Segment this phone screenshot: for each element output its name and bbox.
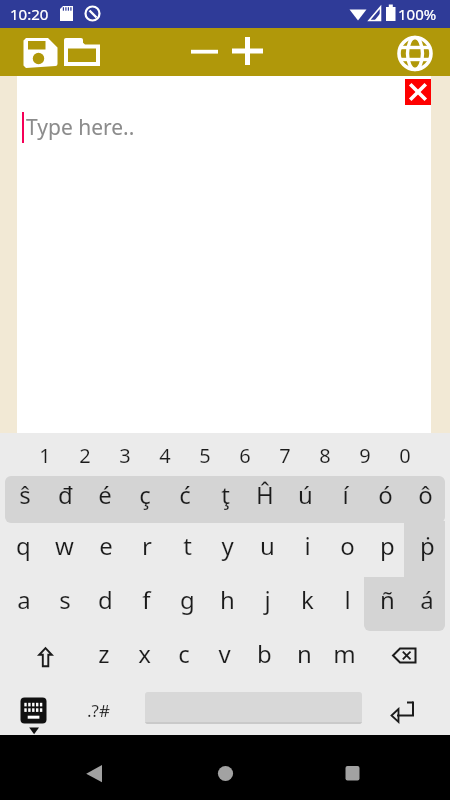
button[interactable]: .?# (78, 685, 118, 735)
button[interactable]: đ (45, 476, 85, 523)
button[interactable]: 7 (265, 433, 305, 473)
staticText: 10:20 (10, 4, 49, 24)
button[interactable]: é (85, 476, 125, 523)
button[interactable]: k (287, 577, 327, 631)
button[interactable]: c (164, 631, 204, 685)
button[interactable] (18, 33, 62, 73)
staticText: 6 (239, 442, 251, 469)
button[interactable]: ô (405, 476, 445, 523)
button[interactable]: 6 (225, 433, 265, 473)
staticText: ô (418, 478, 433, 511)
button[interactable]: ć (165, 476, 205, 523)
button[interactable] (384, 631, 428, 685)
staticText: ţ (221, 478, 230, 511)
button[interactable] (382, 685, 426, 735)
button[interactable]: d (85, 577, 126, 631)
staticText: b (257, 637, 272, 670)
button[interactable]: 1 (25, 433, 65, 473)
button[interactable]: z (84, 631, 124, 685)
staticText: 1 (39, 442, 51, 469)
staticText: l (344, 583, 351, 616)
staticText: 7 (279, 442, 291, 469)
button[interactable] (73, 751, 117, 795)
button[interactable] (393, 30, 437, 74)
button[interactable] (330, 751, 374, 795)
staticText: p (380, 529, 395, 562)
button[interactable]: v (204, 631, 244, 685)
button[interactable]: q (3, 523, 44, 577)
button[interactable]: p (367, 523, 407, 577)
staticText: g (180, 583, 195, 616)
staticText: o (340, 529, 355, 562)
button[interactable]: 2 (65, 433, 105, 473)
button[interactable]: 9 (345, 433, 385, 473)
button[interactable] (14, 685, 58, 735)
button[interactable] (145, 692, 362, 724)
button[interactable] (405, 79, 431, 105)
button[interactable]: j (247, 577, 287, 631)
button[interactable]: í (325, 476, 365, 523)
button[interactable]: e (85, 523, 126, 577)
button[interactable]: 0 (385, 433, 425, 473)
staticText: q (16, 529, 31, 562)
button[interactable]: ú (285, 476, 325, 523)
button[interactable]: r (126, 523, 167, 577)
staticText: ú (298, 478, 313, 511)
button[interactable]: m (324, 631, 364, 685)
staticText: ñ (380, 583, 395, 616)
staticText: 9 (359, 442, 371, 469)
button[interactable]: o (327, 523, 367, 577)
button[interactable]: 5 (185, 433, 225, 473)
staticText: d (98, 583, 113, 616)
staticText: y (221, 529, 234, 562)
button[interactable]: ŝ (5, 476, 45, 523)
button[interactable]: g (167, 577, 207, 631)
button[interactable] (60, 33, 104, 73)
staticText: z (98, 637, 110, 670)
button[interactable]: Ĥ (245, 476, 285, 523)
button[interactable]: ó (365, 476, 405, 523)
staticText: u (260, 529, 275, 562)
staticText: 0 (399, 442, 411, 469)
button[interactable]: 4 (145, 433, 185, 473)
button[interactable]: ç (125, 476, 165, 523)
staticText: ć (179, 478, 191, 511)
staticText: ç (139, 478, 151, 511)
button[interactable]: y (207, 523, 247, 577)
staticText: x (138, 637, 151, 670)
staticText: ṗ (420, 529, 435, 562)
button[interactable]: 3 (105, 433, 145, 473)
button[interactable] (185, 33, 225, 73)
staticText: j (264, 583, 271, 616)
button[interactable]: 8 (305, 433, 345, 473)
button[interactable]: ţ (205, 476, 245, 523)
staticText: 4 (159, 442, 171, 469)
button[interactable]: x (124, 631, 164, 685)
staticText: s (59, 583, 71, 616)
button[interactable]: t (167, 523, 207, 577)
button[interactable]: a (3, 577, 44, 631)
staticText: Ĥ (256, 478, 274, 511)
button[interactable]: ñ (367, 577, 407, 631)
staticText: é (98, 478, 112, 511)
staticText: v (218, 637, 231, 670)
staticText: í (342, 478, 349, 511)
staticText: 2 (79, 442, 91, 469)
button[interactable]: l (327, 577, 367, 631)
button[interactable]: s (44, 577, 85, 631)
button[interactable]: n (284, 631, 324, 685)
staticText: k (301, 583, 314, 616)
button[interactable]: u (247, 523, 287, 577)
staticText: r (142, 529, 152, 562)
button[interactable]: w (44, 523, 85, 577)
button[interactable] (228, 33, 268, 73)
button[interactable]: i (287, 523, 327, 577)
button[interactable] (17, 76, 431, 433)
button[interactable]: b (244, 631, 284, 685)
button[interactable] (203, 751, 247, 795)
button[interactable]: ṗ (407, 523, 447, 577)
button[interactable] (24, 631, 68, 685)
button[interactable]: h (207, 577, 247, 631)
button[interactable]: f (126, 577, 167, 631)
button[interactable]: á (407, 577, 447, 631)
